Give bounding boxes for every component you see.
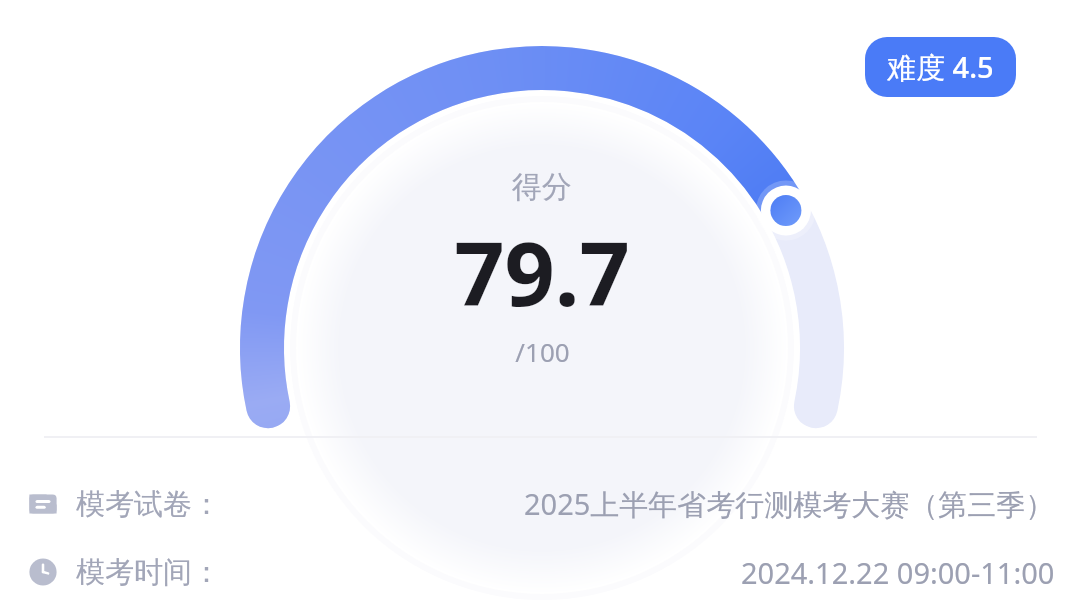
other: Exam time — [26, 555, 60, 589]
staticText: 得分 — [512, 168, 572, 206]
other: Exam paper — [26, 487, 60, 521]
staticText: 模考时间： — [76, 554, 221, 591]
staticText: 79.7 — [454, 212, 630, 332]
staticText: 难度 4.5 — [887, 47, 994, 87]
staticText: /100 — [515, 334, 570, 369]
staticText: 模考试卷： — [76, 486, 221, 523]
button[interactable]: Exam time — [26, 546, 1055, 598]
staticText: 2025上半年省考行测模考大赛（第三季） — [524, 484, 1055, 524]
staticText: 2024.12.22 09:00-11:00 — [741, 553, 1055, 592]
button[interactable]: 难度 4.5 — [865, 37, 1016, 97]
button[interactable]: Exam paper — [26, 478, 1055, 530]
